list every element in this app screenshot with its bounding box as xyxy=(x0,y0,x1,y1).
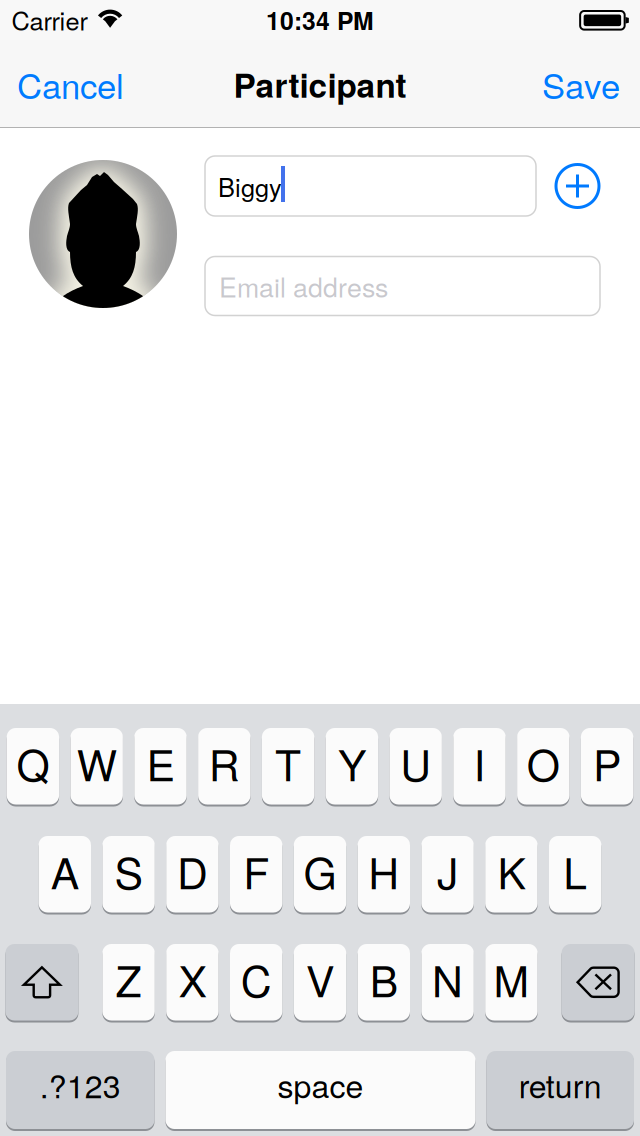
button[interactable]: Shift xyxy=(5,944,78,1020)
button[interactable]: space xyxy=(165,1051,475,1129)
staticText: C xyxy=(241,948,272,1009)
staticText: Carrier xyxy=(11,1,87,38)
staticText: G xyxy=(303,840,336,901)
staticText: I xyxy=(473,732,485,793)
staticText: N xyxy=(432,948,463,1009)
button[interactable]: Save xyxy=(500,40,640,128)
staticText: H xyxy=(368,840,399,901)
staticText: Biggy xyxy=(218,168,282,204)
staticText: F xyxy=(243,840,269,901)
button[interactable]: W xyxy=(70,728,123,804)
button[interactable]: D xyxy=(166,836,219,912)
button[interactable]: Y xyxy=(326,728,378,804)
button[interactable]: Cancel xyxy=(0,40,170,128)
button[interactable]: G xyxy=(294,836,346,912)
button[interactable]: V xyxy=(294,944,346,1020)
button[interactable]: O xyxy=(517,728,569,804)
button[interactable]: E xyxy=(134,728,187,804)
staticText: Participant xyxy=(233,60,406,108)
button[interactable]: Add contact xyxy=(555,164,599,208)
staticText: E xyxy=(146,732,174,793)
staticText: P xyxy=(593,732,621,793)
staticText: Save xyxy=(542,59,620,109)
button[interactable]: X xyxy=(166,944,219,1020)
button[interactable]: H xyxy=(358,836,410,912)
staticText: U xyxy=(400,732,431,793)
staticText: J xyxy=(437,840,458,901)
staticText: T xyxy=(275,732,301,793)
staticText: K xyxy=(497,840,525,901)
staticText: R xyxy=(209,732,240,793)
button[interactable]: K xyxy=(485,836,538,912)
button[interactable]: B xyxy=(358,944,410,1020)
staticText: Email address xyxy=(219,267,388,305)
staticText: V xyxy=(306,948,334,1009)
button[interactable]: L xyxy=(549,836,601,912)
staticText: Cancel xyxy=(17,59,124,109)
button[interactable]: T xyxy=(262,728,314,804)
button[interactable]: I xyxy=(453,728,506,804)
staticText: S xyxy=(115,840,143,901)
button[interactable]: J xyxy=(421,836,474,912)
staticText: space xyxy=(277,1062,363,1107)
button[interactable]: .?123 xyxy=(6,1051,154,1129)
staticText: B xyxy=(370,948,398,1009)
button[interactable]: P xyxy=(581,728,633,804)
button[interactable]: Z xyxy=(102,944,155,1020)
staticText: X xyxy=(178,948,206,1009)
staticText: A xyxy=(51,840,79,901)
button[interactable]: R xyxy=(198,728,250,804)
button[interactable]: U xyxy=(389,728,442,804)
button[interactable]: Q xyxy=(7,728,59,804)
staticText: Y xyxy=(338,732,366,793)
staticText: M xyxy=(493,948,529,1009)
button[interactable]: return xyxy=(486,1051,634,1129)
button[interactable]: S xyxy=(102,836,155,912)
button[interactable]: F xyxy=(230,836,282,912)
staticText: Z xyxy=(116,948,142,1009)
button[interactable]: C xyxy=(230,944,282,1020)
staticText: .?123 xyxy=(40,1062,121,1107)
staticText: W xyxy=(77,732,117,793)
button[interactable]: N xyxy=(421,944,474,1020)
staticText: return xyxy=(519,1062,602,1107)
button[interactable]: M xyxy=(485,944,538,1020)
staticText: O xyxy=(527,732,560,793)
button[interactable]: A xyxy=(39,836,91,912)
staticText: 10:34 PM xyxy=(266,2,374,38)
staticText: D xyxy=(177,840,208,901)
button[interactable]: Delete xyxy=(562,944,635,1020)
staticText: L xyxy=(563,840,587,901)
staticText: Q xyxy=(16,732,49,793)
